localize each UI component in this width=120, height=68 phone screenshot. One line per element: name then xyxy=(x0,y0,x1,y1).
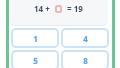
staticText: = 19 xyxy=(67,3,83,14)
staticText: 14 + xyxy=(34,3,50,14)
button[interactable]: 1 xyxy=(11,28,59,48)
staticText: 4 xyxy=(83,33,88,44)
staticText: 5 xyxy=(33,55,38,66)
staticText: 1 xyxy=(33,33,38,44)
staticText: 8 xyxy=(83,55,88,66)
button[interactable]: 8 xyxy=(61,50,109,68)
button[interactable]: 4 xyxy=(61,28,109,48)
button[interactable]: 5 xyxy=(11,50,59,68)
